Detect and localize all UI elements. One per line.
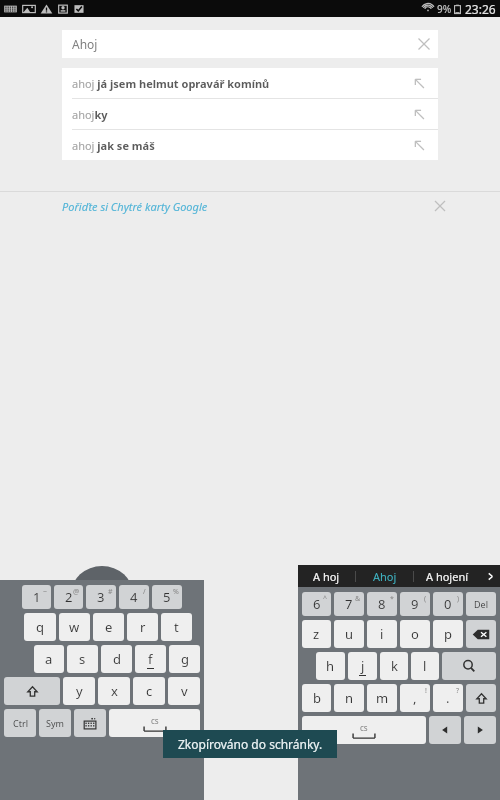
button[interactable]: 0 [433, 592, 463, 616]
staticText: a [45, 650, 53, 668]
staticText: u [345, 625, 354, 643]
button[interactable]: f [135, 645, 166, 673]
button[interactable]: s [67, 645, 98, 673]
staticText: k [391, 657, 398, 675]
staticText: Sym [46, 717, 64, 729]
button[interactable]: Insert suggestion [408, 103, 430, 125]
button[interactable]: 3 [86, 585, 116, 609]
staticText: ahoj jak se máš [72, 138, 155, 153]
staticText: d [113, 650, 121, 668]
button[interactable]: j [348, 652, 377, 680]
staticText: e [105, 618, 113, 636]
button[interactable]: Space [302, 716, 426, 744]
button[interactable]: Move right [464, 716, 496, 744]
button[interactable]: Move keyboard [71, 566, 133, 594]
button[interactable]: y [63, 677, 95, 705]
staticText: b [313, 689, 321, 707]
staticText: 1 [33, 588, 41, 606]
button[interactable]: 9 [400, 592, 430, 616]
button[interactable]: Move left [429, 716, 461, 744]
staticText: * [390, 594, 394, 604]
button[interactable]: 8 [367, 592, 397, 616]
staticText: q [36, 618, 44, 636]
button[interactable]: Del [466, 592, 496, 616]
staticText: # [108, 587, 113, 597]
staticText: r [140, 618, 146, 636]
staticText: Zkopírováno do schránky. [178, 736, 323, 752]
staticText: l [423, 657, 427, 675]
button[interactable]: Backspace [466, 620, 496, 648]
button[interactable]: q [24, 613, 56, 641]
staticText: 6 [313, 595, 321, 613]
button[interactable]: Space [109, 709, 200, 737]
staticText: x [111, 682, 118, 700]
staticText: v [181, 682, 188, 700]
staticText: . [446, 689, 450, 707]
button[interactable]: Switch keyboard [74, 709, 106, 737]
button[interactable]: u [334, 620, 364, 648]
button[interactable]: Pořiďte si Chytré karty Google [0, 192, 500, 220]
staticText: g [181, 650, 189, 668]
staticText: w [69, 618, 80, 636]
button[interactable]: n [334, 684, 364, 712]
button[interactable]: More suggestions [480, 565, 500, 587]
button[interactable]: Shift [4, 677, 60, 705]
staticText: ^ [323, 594, 328, 604]
button[interactable]: Shift [466, 684, 496, 712]
button[interactable]: d [101, 645, 132, 673]
button[interactable]: l [411, 652, 439, 680]
button[interactable]: v [168, 677, 200, 705]
staticText: j [361, 657, 365, 675]
button[interactable]: w [59, 613, 90, 641]
staticText: @ [73, 587, 80, 597]
button[interactable]: Insert suggestion [408, 134, 430, 156]
button[interactable]: Search [442, 652, 496, 680]
button[interactable]: 6 [302, 592, 331, 616]
button[interactable]: Ahoj [356, 565, 413, 587]
button[interactable]: Ahoj [62, 30, 438, 58]
button[interactable]: 4 [119, 585, 149, 609]
button[interactable]: Sym [39, 709, 71, 737]
button[interactable]: b [302, 684, 331, 712]
staticText: i [380, 625, 384, 643]
button[interactable]: z [302, 620, 331, 648]
button[interactable]: g [169, 645, 200, 673]
button[interactable]: ahoj já jsem helmut opravář komínů [62, 68, 438, 98]
button[interactable]: . [433, 684, 463, 712]
button[interactable]: 2 [54, 585, 83, 609]
button[interactable]: 7 [334, 592, 364, 616]
button[interactable]: A hojení [414, 565, 480, 587]
staticText: c [146, 682, 153, 700]
button[interactable]: o [400, 620, 430, 648]
button[interactable]: a [34, 645, 64, 673]
staticText: ) [457, 594, 460, 604]
button[interactable]: 5 [152, 585, 182, 609]
button[interactable]: Insert suggestion [408, 72, 430, 94]
button[interactable]: , [400, 684, 430, 712]
button[interactable]: t [161, 613, 192, 641]
button[interactable]: i [367, 620, 397, 648]
staticText: p [444, 625, 452, 643]
button[interactable]: Clear search [410, 30, 438, 58]
button[interactable]: A hoj [298, 565, 355, 587]
button[interactable]: e [93, 613, 124, 641]
button[interactable]: 1 [22, 585, 51, 609]
button[interactable]: r [127, 613, 158, 641]
button[interactable]: x [98, 677, 130, 705]
button[interactable]: m [367, 684, 397, 712]
staticText: 4 [130, 588, 138, 606]
button[interactable]: Ctrl [4, 709, 36, 737]
button[interactable]: k [380, 652, 408, 680]
staticText: z [313, 625, 320, 643]
button[interactable]: h [316, 652, 345, 680]
button[interactable]: p [433, 620, 463, 648]
staticText: o [411, 625, 419, 643]
staticText: y [76, 682, 83, 700]
staticText: h [326, 657, 335, 675]
button[interactable]: ahojky [62, 99, 438, 129]
button[interactable]: Dismiss [428, 194, 452, 218]
button[interactable]: c [133, 677, 165, 705]
button[interactable]: ahoj jak se máš [62, 130, 438, 160]
staticText: 2 [65, 588, 73, 606]
staticText: 23:26 [465, 1, 496, 17]
